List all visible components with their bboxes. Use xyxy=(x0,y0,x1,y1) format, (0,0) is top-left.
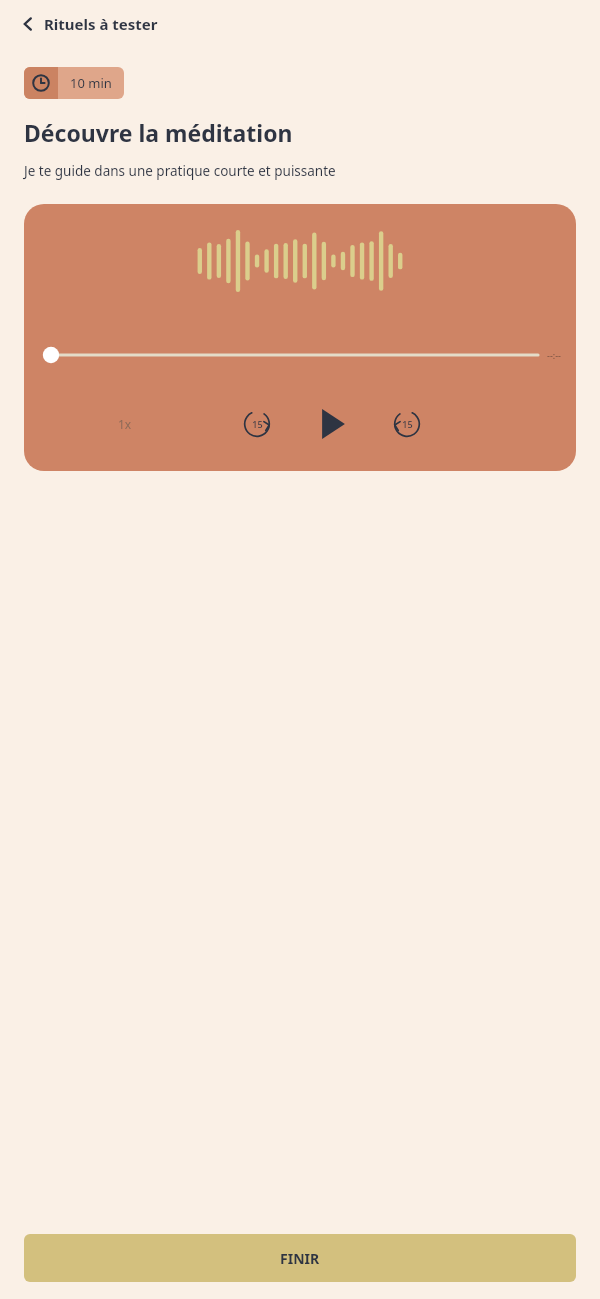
staticText: FINIR xyxy=(280,1249,320,1268)
staticText: Découvre la méditation xyxy=(24,117,293,148)
other: Back xyxy=(18,14,38,34)
staticText: Rituels à tester xyxy=(44,14,158,34)
button[interactable]: 10 min xyxy=(24,67,124,99)
button[interactable]: FINIR xyxy=(24,1234,576,1282)
button[interactable]: Play xyxy=(310,402,354,446)
button[interactable]: Back xyxy=(14,8,162,40)
staticText: --:-- xyxy=(547,349,562,361)
button[interactable] xyxy=(42,346,538,364)
button[interactable]: Rewind 15 seconds xyxy=(236,403,278,445)
button[interactable]: 1x xyxy=(110,410,140,438)
button[interactable]: Forward 15 seconds xyxy=(386,403,428,445)
staticText: 15 xyxy=(252,418,263,430)
staticText: 1x xyxy=(118,416,132,432)
staticText: Je te guide dans une pratique courte et … xyxy=(24,162,336,180)
staticText: 15 xyxy=(402,418,413,430)
staticText: 10 min xyxy=(70,74,112,92)
